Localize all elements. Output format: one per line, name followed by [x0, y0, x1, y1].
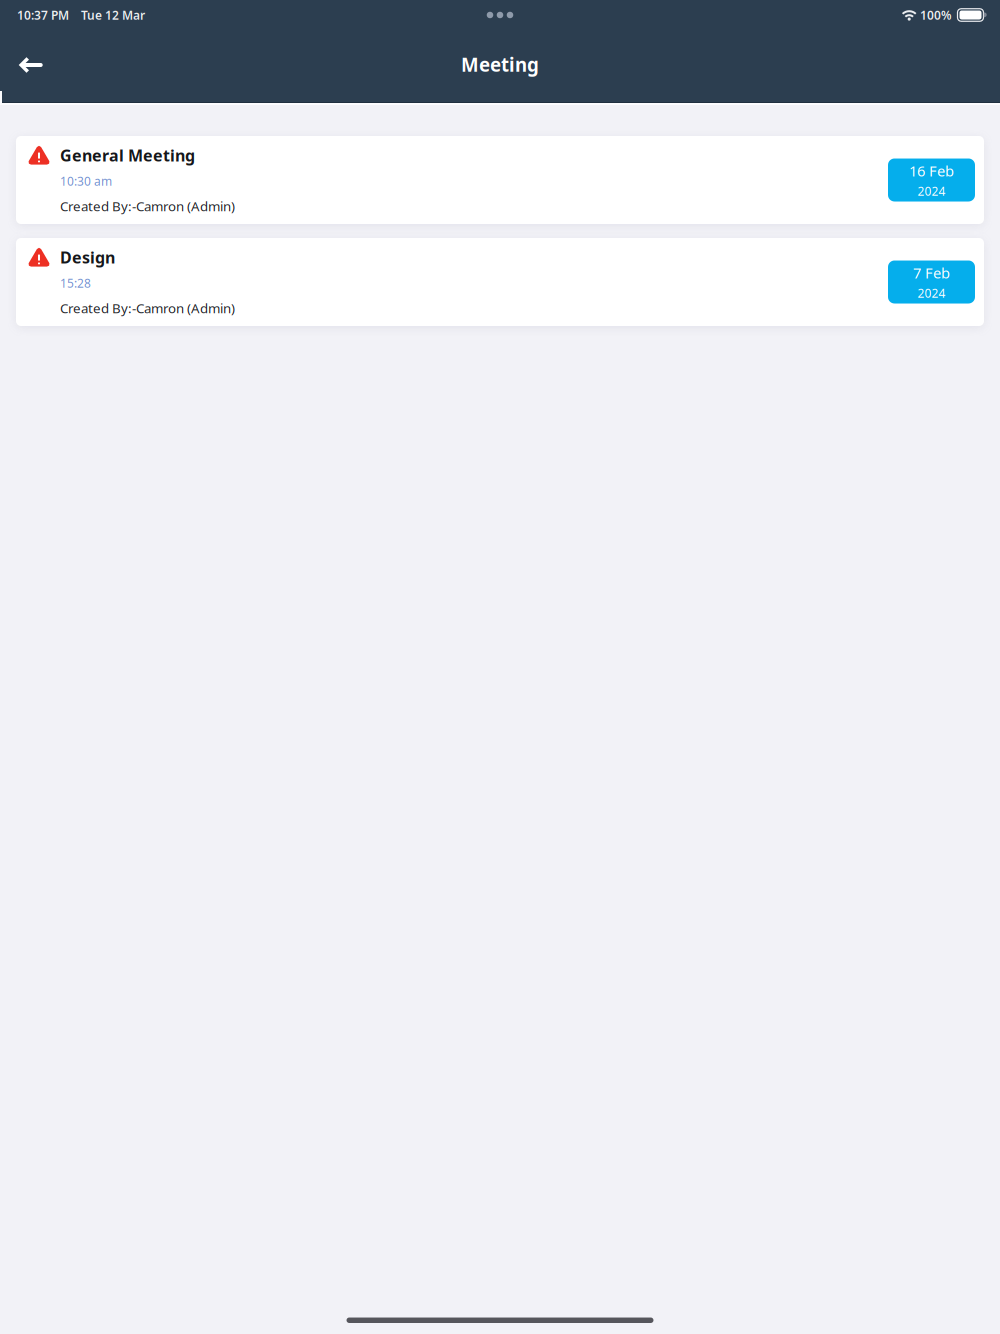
staticText: Tue 12 Mar	[81, 7, 145, 23]
button[interactable]: Back	[0, 43, 62, 87]
staticText: Created By:-Camron (Admin)	[60, 197, 235, 215]
staticText: 15:28	[60, 275, 91, 291]
staticText: Meeting	[461, 52, 539, 77]
staticText: Created By:-Camron (Admin)	[60, 299, 235, 317]
staticText: Design	[60, 247, 115, 268]
staticText: 2024	[917, 285, 945, 301]
staticText: General Meeting	[60, 145, 195, 166]
staticText: 100%	[920, 7, 952, 23]
staticText: 2024	[917, 183, 945, 199]
staticText: 16 Feb	[909, 161, 954, 180]
button[interactable]: Design	[16, 238, 984, 326]
button[interactable]: General Meeting	[16, 136, 984, 224]
staticText: 10:30 am	[60, 173, 112, 189]
staticText: 10:37 PM	[17, 7, 69, 23]
staticText: 7 Feb	[913, 263, 950, 282]
